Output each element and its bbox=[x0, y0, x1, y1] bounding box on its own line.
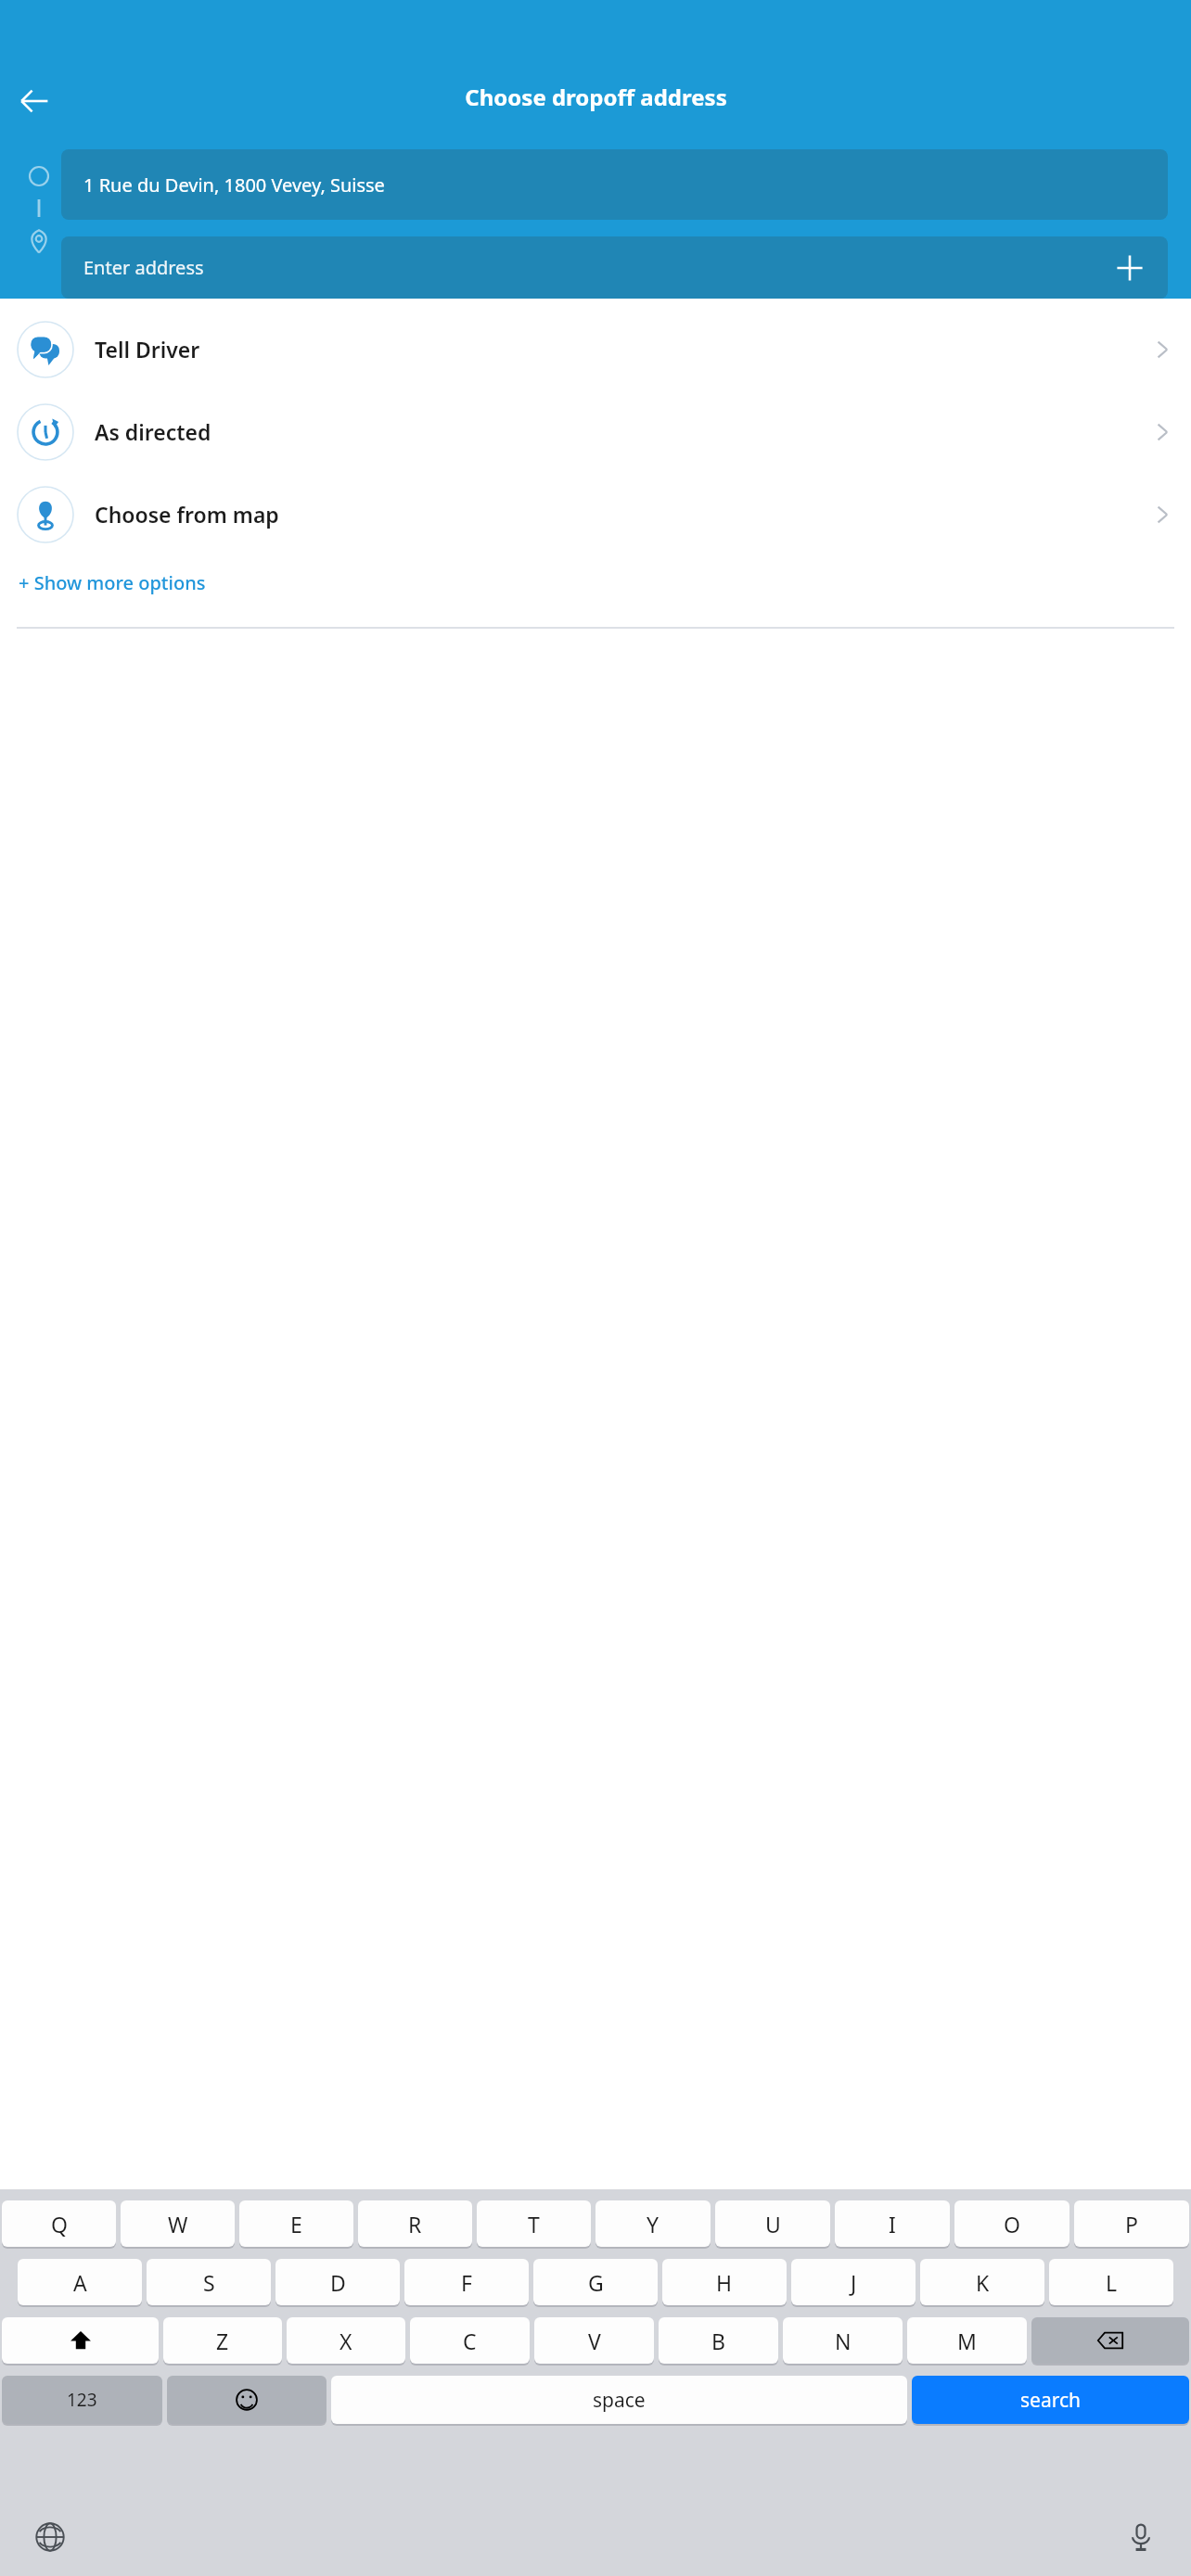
staticText: Z bbox=[216, 2327, 229, 2355]
button[interactable]: C bbox=[410, 2317, 530, 2364]
button[interactable]: search bbox=[912, 2376, 1189, 2424]
staticText: + Show more options bbox=[19, 570, 206, 595]
staticText: 1 Rue du Devin, 1800 Vevey, Suisse bbox=[83, 172, 385, 198]
button[interactable]: Choose from map bbox=[0, 473, 1191, 555]
staticText: Q bbox=[51, 2210, 68, 2238]
button[interactable]: Y bbox=[595, 2200, 711, 2247]
button[interactable]: F bbox=[404, 2259, 529, 2305]
button[interactable]: As directed bbox=[0, 390, 1191, 473]
staticText: G bbox=[588, 2268, 604, 2297]
staticText: R bbox=[408, 2210, 422, 2238]
button[interactable]: Enter address bbox=[61, 236, 1168, 299]
staticText: X bbox=[339, 2327, 352, 2355]
button[interactable]: V bbox=[534, 2317, 654, 2364]
staticText: V bbox=[588, 2327, 601, 2355]
button[interactable]: Change language bbox=[26, 2513, 74, 2561]
staticText: K bbox=[976, 2268, 990, 2297]
button[interactable]: L bbox=[1049, 2259, 1173, 2305]
staticText: L bbox=[1106, 2268, 1118, 2297]
staticText: Enter address bbox=[83, 255, 204, 280]
staticText: W bbox=[168, 2210, 188, 2238]
staticText: U bbox=[765, 2210, 781, 2238]
button[interactable]: M bbox=[907, 2317, 1027, 2364]
staticText: Choose from map bbox=[95, 500, 279, 529]
staticText: C bbox=[463, 2327, 477, 2355]
button[interactable]: Emoji bbox=[167, 2376, 327, 2424]
button[interactable]: R bbox=[358, 2200, 472, 2247]
staticText: I bbox=[889, 2210, 896, 2238]
staticText: Tell Driver bbox=[95, 335, 200, 363]
staticText: O bbox=[1004, 2210, 1020, 2238]
button[interactable]: G bbox=[533, 2259, 658, 2305]
staticText: S bbox=[203, 2268, 215, 2297]
staticText: As directed bbox=[95, 417, 211, 446]
staticText: search bbox=[1020, 2387, 1081, 2414]
button[interactable]: Back bbox=[8, 75, 60, 127]
button[interactable]: K bbox=[920, 2259, 1044, 2305]
button[interactable]: B bbox=[659, 2317, 778, 2364]
staticText: J bbox=[851, 2268, 857, 2297]
staticText: Choose dropoff address bbox=[465, 82, 727, 112]
button[interactable]: Tell Driver bbox=[0, 308, 1191, 390]
staticText: A bbox=[73, 2268, 87, 2297]
button[interactable]: S bbox=[147, 2259, 271, 2305]
button[interactable]: W bbox=[121, 2200, 235, 2247]
button[interactable]: J bbox=[791, 2259, 916, 2305]
button[interactable]: N bbox=[783, 2317, 903, 2364]
button[interactable]: U bbox=[715, 2200, 830, 2247]
button[interactable]: P bbox=[1074, 2200, 1189, 2247]
button[interactable]: E bbox=[239, 2200, 353, 2247]
button[interactable]: Z bbox=[163, 2317, 282, 2364]
staticText: P bbox=[1125, 2210, 1138, 2238]
button[interactable]: H bbox=[662, 2259, 787, 2305]
staticText: M bbox=[957, 2327, 977, 2355]
staticText: N bbox=[835, 2327, 852, 2355]
button[interactable]: I bbox=[835, 2200, 950, 2247]
button[interactable]: 123 bbox=[2, 2376, 162, 2424]
button[interactable]: Voice input bbox=[1117, 2513, 1165, 2561]
button[interactable]: D bbox=[275, 2259, 400, 2305]
button[interactable]: 1 Rue du Devin, 1800 Vevey, Suisse bbox=[61, 149, 1168, 220]
staticText: Y bbox=[647, 2210, 660, 2238]
staticText: H bbox=[716, 2268, 733, 2297]
button[interactable]: + Show more options bbox=[17, 563, 208, 603]
staticText: T bbox=[528, 2210, 540, 2238]
staticText: F bbox=[461, 2268, 472, 2297]
staticText: 123 bbox=[67, 2388, 97, 2412]
button[interactable]: Q bbox=[2, 2200, 116, 2247]
button[interactable]: T bbox=[477, 2200, 591, 2247]
button[interactable]: X bbox=[287, 2317, 405, 2364]
button[interactable]: Backspace bbox=[1031, 2317, 1189, 2364]
button[interactable]: A bbox=[18, 2259, 142, 2305]
button[interactable]: O bbox=[954, 2200, 1069, 2247]
button[interactable]: space bbox=[331, 2376, 907, 2424]
button[interactable]: Shift bbox=[2, 2317, 159, 2364]
staticText: D bbox=[330, 2268, 346, 2297]
staticText: space bbox=[593, 2387, 646, 2414]
staticText: E bbox=[290, 2210, 302, 2238]
staticText: B bbox=[711, 2327, 725, 2355]
